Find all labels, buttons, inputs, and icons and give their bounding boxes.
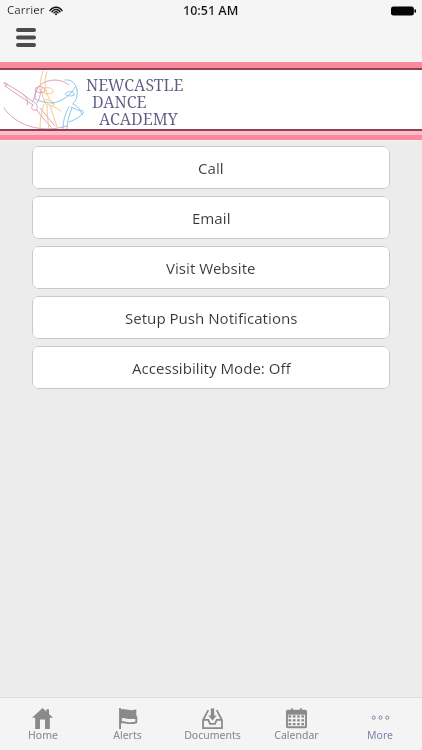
button[interactable]: Calendar	[254, 698, 338, 750]
staticText: ACADEMY	[99, 108, 178, 125]
staticText: NEWCASTLE	[86, 74, 184, 91]
button[interactable]: Accessibility Mode: Off	[32, 346, 390, 389]
staticText: DANCE	[92, 91, 147, 108]
staticText: 10:51 AM	[183, 2, 239, 19]
button[interactable]: Visit Website	[32, 246, 390, 289]
staticText: Accessibility Mode: Off	[132, 358, 291, 378]
staticText: More	[367, 728, 393, 740]
staticText: Home	[28, 728, 58, 740]
button[interactable]: Call	[32, 146, 390, 189]
staticText: Calendar	[274, 728, 319, 740]
staticText: Setup Push Notifications	[125, 308, 298, 328]
button[interactable]: Home	[0, 698, 85, 750]
staticText: Visit Website	[166, 258, 256, 278]
button[interactable]: Setup Push Notifications	[32, 296, 390, 339]
button[interactable]: Menu	[0, 20, 52, 61]
button[interactable]: Documents	[170, 698, 254, 750]
staticText: Alerts	[113, 728, 142, 740]
staticText: Call	[198, 158, 224, 178]
button[interactable]: Email	[32, 196, 390, 239]
button[interactable]: More	[338, 698, 422, 750]
staticText: Documents	[184, 728, 241, 740]
button[interactable]: Alerts	[85, 698, 170, 750]
staticText: Carrier	[7, 2, 45, 18]
staticText: Email	[192, 208, 231, 228]
